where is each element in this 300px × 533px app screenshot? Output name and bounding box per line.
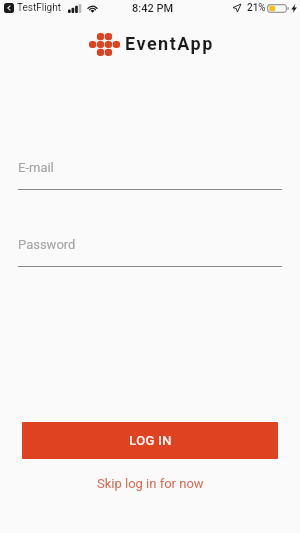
staticText: 21% <box>247 2 266 14</box>
button[interactable]: LOG IN <box>22 422 278 459</box>
staticText: Skip log in for now <box>97 476 204 491</box>
staticText: 8:42 PM <box>132 2 174 15</box>
staticText: EventApp <box>125 33 214 54</box>
button[interactable]: Skip log in for now <box>89 472 212 495</box>
staticText: TestFlight <box>17 2 62 14</box>
staticText: E-mail <box>18 160 54 175</box>
staticText: Password <box>18 237 76 252</box>
staticText: LOG IN <box>129 433 172 448</box>
